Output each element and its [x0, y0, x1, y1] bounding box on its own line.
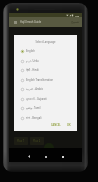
button[interactable]: Plus 7	[14, 137, 28, 145]
button[interactable]: English	[14, 46, 77, 56]
button[interactable]: العربية - Arabic	[14, 84, 77, 94]
staticText: English	[26, 49, 35, 53]
button[interactable]: ગુજરાતી - Gujarati	[14, 94, 77, 104]
button[interactable]: CANCEL	[49, 121, 63, 128]
staticText: हिंदी - Hindi	[26, 68, 39, 72]
button[interactable]: اردو - Urdu	[14, 56, 77, 66]
button[interactable]: Back	[25, 153, 32, 160]
button[interactable]: தமிழ் - Tamil	[14, 103, 77, 113]
button[interactable]: English Transliteration	[14, 75, 77, 85]
button[interactable]: Recent apps	[59, 153, 66, 160]
staticText: বাংলা - Bengali	[26, 116, 42, 120]
staticText: Haj/Umrah Guide	[20, 20, 42, 24]
staticText: Select Language	[14, 40, 77, 44]
staticText: Plus 2	[33, 139, 41, 143]
button[interactable]: हिंदी - Hindi	[14, 65, 77, 75]
staticText: اردو - Urdu	[26, 59, 39, 63]
button[interactable]: বাংলা - Bengali	[14, 113, 77, 123]
button[interactable]: OK	[65, 121, 73, 128]
staticText: English Transliteration	[26, 78, 54, 82]
button[interactable]: تسبيح	[70, 18, 81, 26]
button[interactable]: Plus 2	[30, 137, 44, 145]
staticText: Plus 7	[17, 139, 25, 143]
staticText: 100	[75, 14, 80, 17]
staticText: தமிழ் - Tamil	[26, 106, 41, 110]
staticText: العربية - Arabic	[26, 87, 43, 91]
staticText: ગુજરાતી - Gujarati	[26, 97, 47, 101]
button[interactable]: Home	[42, 153, 49, 160]
button[interactable]: Open navigation menu	[13, 18, 17, 27]
